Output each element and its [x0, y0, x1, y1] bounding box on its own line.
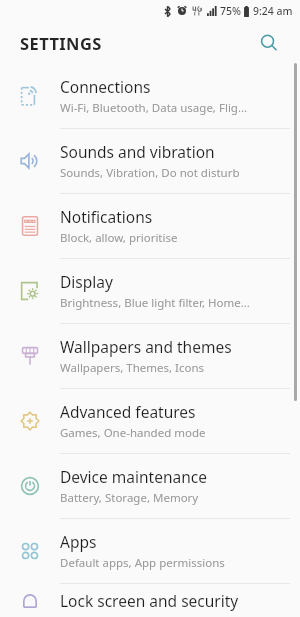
staticText: Notifications [60, 206, 153, 227]
staticText: Games, One-handed mode [60, 425, 206, 441]
button[interactable]: Lock screen and security [0, 584, 300, 617]
staticText: Apps [60, 531, 97, 552]
button[interactable]: Notifications [0, 194, 300, 258]
staticText: Lock screen and security [60, 590, 239, 611]
staticText: 9:24 am [253, 4, 293, 18]
staticText: Wallpapers, Themes, Icons [60, 360, 205, 376]
staticText: Block, allow, prioritise [60, 230, 178, 246]
button[interactable]: Wallpapers and themes [0, 324, 300, 388]
staticText: Wi-Fi, Bluetooth, Data usage, Flig… [60, 100, 248, 116]
staticText: Advanced features [60, 401, 196, 422]
staticText: Brightness, Blue light filter, Home… [60, 295, 250, 311]
staticText: Wallpapers and themes [60, 336, 232, 357]
button[interactable]: Apps [0, 519, 300, 583]
staticText: Battery, Storage, Memory [60, 490, 199, 506]
staticText: 75% [220, 4, 241, 18]
staticText: SETTINGS [20, 32, 102, 54]
staticText: Device maintenance [60, 466, 207, 487]
button[interactable]: Sounds and vibration [0, 129, 300, 193]
staticText: Default apps, App permissions [60, 555, 225, 571]
staticText: Connections [60, 76, 151, 97]
button[interactable]: Search [252, 26, 286, 60]
button[interactable]: Connections [0, 64, 300, 128]
button[interactable]: Device maintenance [0, 454, 300, 518]
button[interactable]: Display [0, 259, 300, 323]
button[interactable]: Advanced features [0, 389, 300, 453]
staticText: Display [60, 271, 113, 292]
staticText: Sounds and vibration [60, 141, 215, 162]
staticText: Sounds, Vibration, Do not disturb [60, 165, 240, 181]
